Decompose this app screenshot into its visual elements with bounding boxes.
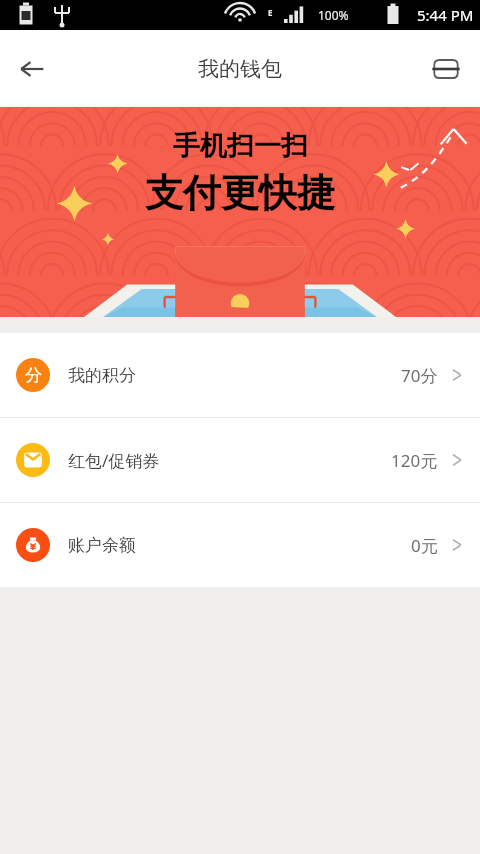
button[interactable]: Back (8, 45, 56, 93)
button[interactable]: 红包/促销券 (0, 418, 480, 502)
staticText: 5:44 PM (417, 5, 474, 25)
staticText: 支付更快捷 (145, 169, 335, 217)
button[interactable]: Scan (422, 45, 470, 93)
staticText: 我的积分 (68, 365, 136, 386)
staticText: 分 (25, 365, 42, 386)
staticText: 70分 (401, 364, 438, 387)
staticText: 红包/促销券 (68, 449, 160, 472)
staticText: 0元 (411, 534, 438, 557)
button[interactable]: 账户余额 (0, 503, 480, 587)
button[interactable]: 分 (0, 333, 480, 417)
staticText: E (268, 7, 273, 18)
staticText: 我的钱包 (198, 56, 282, 82)
staticText: 100% (318, 7, 349, 23)
staticText: 账户余额 (68, 535, 136, 556)
staticText: 手机扫一扫 (173, 129, 308, 163)
staticText: 120元 (391, 449, 438, 472)
